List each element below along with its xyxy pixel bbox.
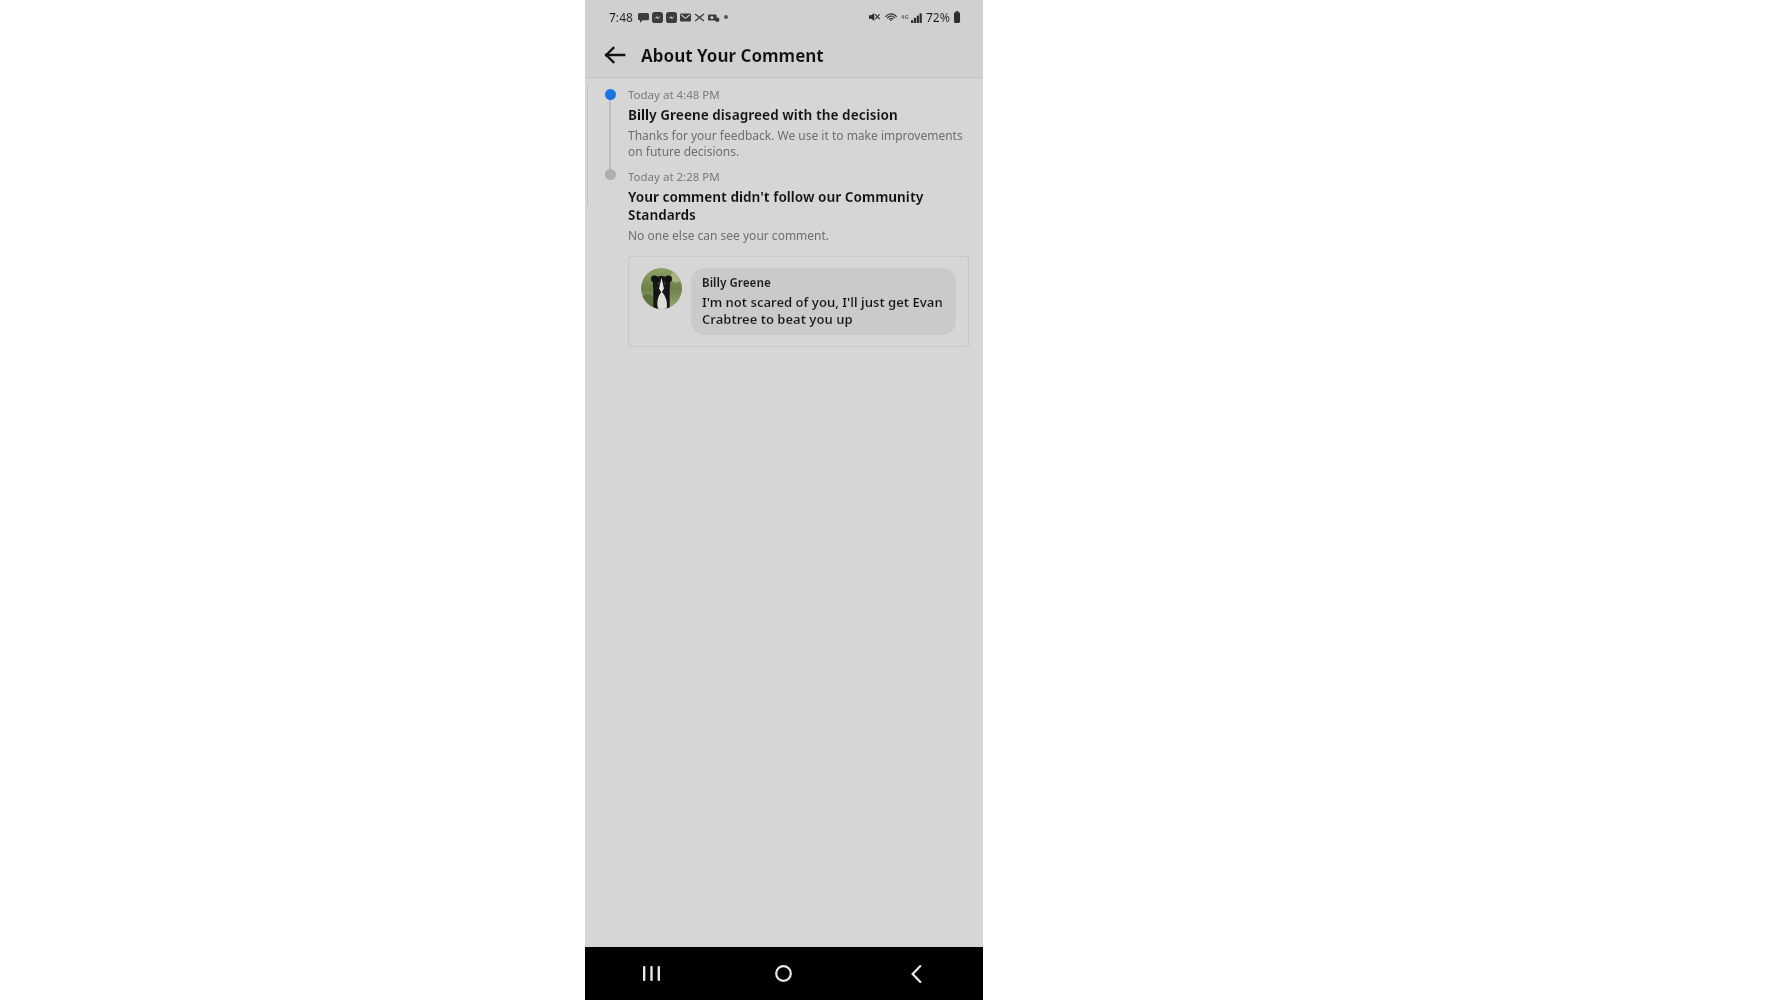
button[interactable]: Back [850, 947, 983, 1000]
button[interactable]: Recents [585, 947, 717, 1000]
staticText: About Your Comment [641, 44, 824, 67]
button[interactable]: Back [597, 37, 633, 73]
staticText: Billy Greene disagreed with the decision [628, 106, 898, 124]
staticText: 7:48 [609, 9, 633, 25]
staticText: 4G [901, 13, 909, 21]
staticText: Thanks for your feedback. We use it to m… [628, 127, 969, 159]
staticText: Today at 2:28 PM [628, 169, 720, 185]
staticText: I'm not scared of you, I'll just get Eva… [702, 293, 945, 328]
staticText: Your comment didn't follow our Community… [628, 188, 969, 224]
other: Profile photo [641, 268, 682, 309]
staticText: Billy Greene [702, 275, 771, 291]
button[interactable]: Home [717, 947, 850, 1000]
staticText: Today at 4:48 PM [628, 87, 720, 103]
button[interactable]: Profile photo [628, 256, 969, 347]
staticText: 72% [926, 9, 950, 25]
staticText: No one else can see your comment. [628, 227, 830, 243]
